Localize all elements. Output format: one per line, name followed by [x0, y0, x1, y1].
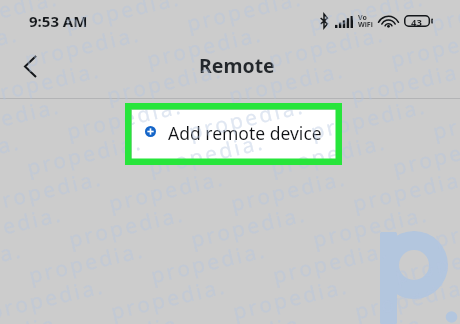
staticText: 43 [411, 16, 422, 29]
button[interactable]: Back [13, 49, 47, 83]
staticText: Add remote device [168, 121, 322, 145]
staticText: 9:53 AM [29, 11, 88, 31]
staticText: Remote [199, 52, 275, 79]
button[interactable]: Add remote device [132, 110, 336, 159]
